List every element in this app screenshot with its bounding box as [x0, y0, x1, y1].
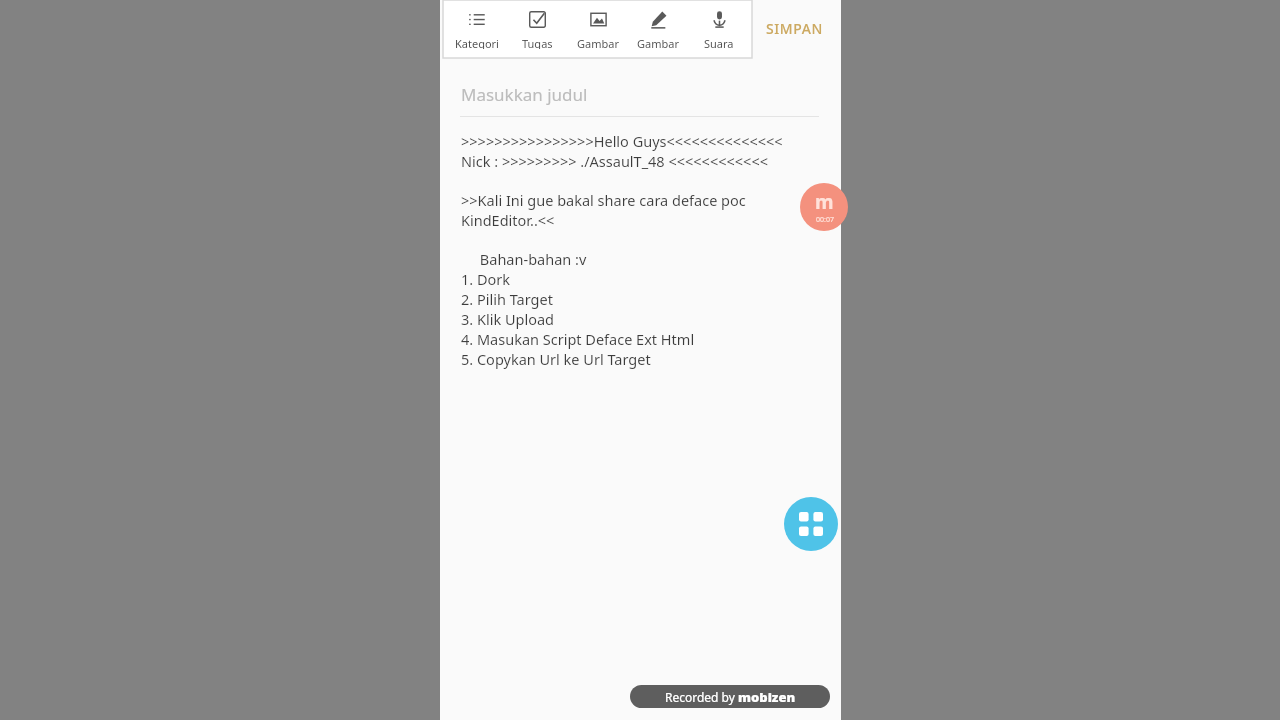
staticText: mobizen — [738, 688, 796, 706]
button[interactable]: Apps grid — [784, 497, 838, 551]
staticText: Masukkan judul — [461, 83, 588, 106]
button[interactable]: >>>>>>>>>>>>>>>>Hello Guys<<<<<<<<<<<<<< — [440, 117, 841, 369]
button[interactable]: Masukkan judul — [440, 83, 841, 106]
staticText: KindEditor..<< — [461, 210, 555, 230]
staticText: 1. Dork — [461, 269, 511, 289]
button[interactable]: Suara — [690, 0, 748, 58]
staticText: Gambar — [637, 36, 679, 49]
staticText: Recorded by — [665, 689, 738, 705]
staticText: Kategori — [455, 36, 499, 49]
staticText: 5. Copykan Url ke Url Target — [461, 349, 651, 369]
staticText: Suara — [704, 36, 734, 49]
staticText: 4. Masukan Script Deface Ext Html — [461, 329, 695, 349]
staticText: SIMPAN — [766, 19, 823, 38]
button[interactable]: Mobizen recorder — [800, 183, 848, 231]
staticText: m — [815, 189, 834, 215]
staticText: 2. Pilih Target — [461, 289, 553, 309]
staticText: Bahan-bahan :v — [461, 249, 587, 269]
staticText: 3. Klik Upload — [461, 309, 555, 329]
staticText: >>>>>>>>>>>>>>>>Hello Guys<<<<<<<<<<<<<< — [461, 131, 783, 151]
button[interactable]: Gambar — [629, 0, 687, 58]
staticText: Nick : >>>>>>>>> ./AssaulT_48 <<<<<<<<<<… — [461, 151, 768, 171]
staticText: Gambar — [577, 36, 619, 49]
staticText: Tugas — [522, 36, 553, 49]
button[interactable]: Tugas — [508, 0, 566, 58]
button[interactable]: Gambar — [569, 0, 627, 58]
staticText: >>Kali Ini gue bakal share cara deface p… — [461, 190, 746, 210]
button[interactable]: SIMPAN — [760, 14, 829, 43]
button[interactable]: Kategori — [448, 0, 506, 58]
staticText: 00:07 — [816, 215, 834, 225]
